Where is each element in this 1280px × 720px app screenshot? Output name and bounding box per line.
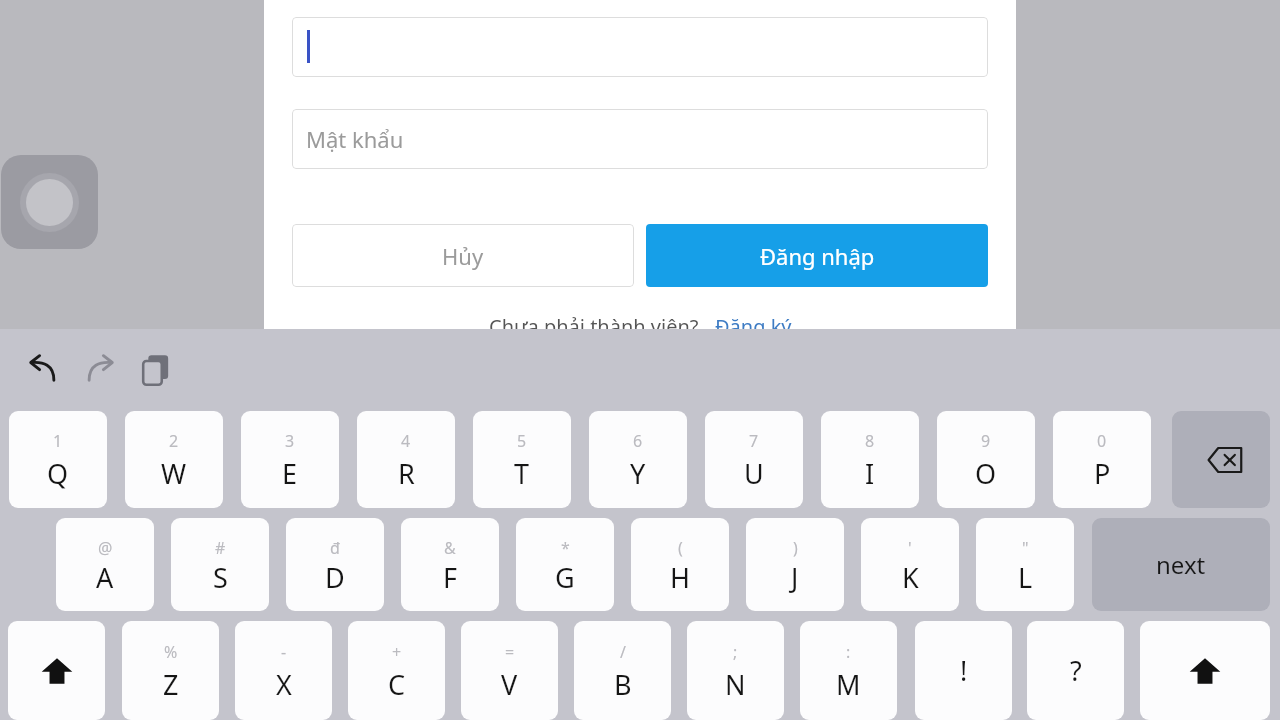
staticText: G [555, 559, 575, 596]
button[interactable]: - [235, 621, 332, 720]
button[interactable]: 9 [937, 411, 1035, 508]
button[interactable]: / [574, 621, 671, 720]
staticText: Hủy [442, 241, 484, 271]
staticText: H [670, 559, 691, 596]
button[interactable]: ; [687, 621, 784, 720]
staticText: 8 [865, 430, 875, 452]
staticText: I [865, 455, 875, 492]
button[interactable]: 3 [241, 411, 339, 508]
button[interactable]: 2 [125, 411, 223, 508]
staticText: R [398, 455, 415, 492]
button[interactable]: 6 [589, 411, 687, 508]
staticText: C [388, 666, 406, 703]
button[interactable]: & [401, 518, 499, 611]
button[interactable]: Clipboard [131, 345, 181, 395]
staticText: " [1022, 537, 1029, 559]
button[interactable]: 8 [821, 411, 919, 508]
staticText: P [1094, 455, 1111, 492]
staticText: : [846, 641, 851, 663]
staticText: / [620, 641, 626, 663]
staticText: T [514, 455, 530, 492]
button[interactable]: 7 [705, 411, 803, 508]
button[interactable]: * [516, 518, 614, 611]
staticText: Mật khẩu [306, 124, 404, 154]
staticText: ; [733, 641, 738, 663]
staticText: X [276, 666, 292, 703]
staticText: ) [793, 537, 798, 559]
button[interactable]: Undo [18, 345, 68, 395]
button[interactable]: : [800, 621, 897, 720]
button[interactable]: next [1092, 518, 1270, 611]
staticText: ! [960, 652, 968, 689]
staticText: # [215, 537, 226, 559]
staticText: + [392, 641, 402, 663]
staticText: F [443, 559, 458, 596]
staticText: Z [163, 666, 179, 703]
staticText: 2 [169, 430, 179, 452]
staticText: N [725, 666, 746, 703]
staticText: W [161, 455, 187, 492]
staticText: 3 [285, 430, 295, 452]
button[interactable]: 1 [9, 411, 107, 508]
button[interactable]: App icon [1, 155, 98, 249]
staticText: D [325, 559, 345, 596]
staticText: = [505, 641, 515, 663]
staticText: Đăng nhập [760, 241, 875, 271]
button[interactable]: Backspace [1172, 411, 1270, 508]
staticText: @ [98, 537, 113, 559]
button[interactable]: Mật khẩu [292, 109, 988, 169]
staticText: ? [1070, 652, 1082, 689]
button[interactable]: Hủy [292, 224, 634, 287]
staticText: E [282, 455, 298, 492]
staticText: J [791, 559, 799, 596]
staticText: L [1018, 559, 1033, 596]
staticText: & [444, 537, 456, 559]
staticText: 4 [401, 430, 411, 452]
staticText: M [836, 666, 861, 703]
button[interactable]: = [461, 621, 558, 720]
staticText: Y [630, 455, 646, 492]
staticText: ' [908, 537, 912, 559]
staticText: Q [47, 455, 69, 492]
staticText: % [164, 641, 178, 663]
staticText: U [744, 455, 764, 492]
staticText: Chưa phải thành viên? [489, 313, 715, 340]
button[interactable]: # [171, 518, 269, 611]
button[interactable]: @ [56, 518, 154, 611]
staticText: 1 [53, 430, 63, 452]
button[interactable]: Đăng nhập [646, 224, 988, 287]
staticText: 0 [1097, 430, 1107, 452]
button[interactable]: 0 [1053, 411, 1151, 508]
staticText: * [561, 537, 570, 559]
button[interactable]: 5 [473, 411, 571, 508]
button[interactable]: Đăng ký [715, 313, 792, 340]
button[interactable]: % [122, 621, 219, 720]
staticText: ( [678, 537, 683, 559]
button[interactable]: 4 [357, 411, 455, 508]
staticText: 9 [981, 430, 991, 452]
staticText: V [501, 666, 518, 703]
button[interactable]: " [976, 518, 1074, 611]
button[interactable]: ) [746, 518, 844, 611]
staticText: B [614, 666, 632, 703]
button[interactable]: đ [286, 518, 384, 611]
staticText: A [96, 559, 114, 596]
button[interactable]: Shift [8, 621, 105, 720]
staticText: O [975, 455, 997, 492]
button[interactable]: Shift [1140, 621, 1270, 720]
button[interactable]: Email [292, 17, 988, 77]
button[interactable]: ( [631, 518, 729, 611]
staticText: S [213, 559, 228, 596]
staticText: đ [330, 537, 340, 559]
button[interactable]: Redo [75, 345, 125, 395]
staticText: K [902, 559, 919, 596]
staticText: 7 [749, 430, 759, 452]
button[interactable]: ? [1027, 621, 1124, 720]
button[interactable]: ' [861, 518, 959, 611]
button[interactable]: ! [915, 621, 1012, 720]
staticText: 6 [633, 430, 643, 452]
button[interactable]: + [348, 621, 445, 720]
staticText: 5 [517, 430, 527, 452]
staticText: next [1156, 548, 1206, 581]
staticText: - [281, 641, 287, 663]
